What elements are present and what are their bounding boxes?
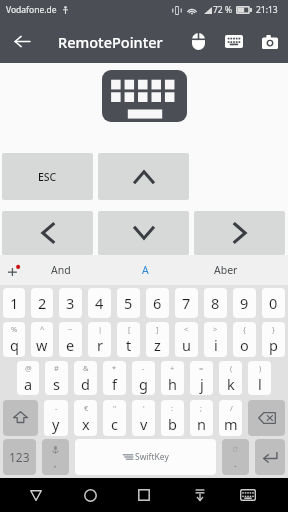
button[interactable]: 7 [175,288,198,318]
button[interactable]: 6 [146,288,169,318]
button[interactable]: > [204,322,227,357]
button[interactable]: Back [0,20,44,63]
staticText: " [113,403,117,413]
button[interactable]: ' [132,400,155,436]
staticText: { [243,324,246,334]
button[interactable]: Period [222,439,249,475]
button[interactable]: " [103,400,126,436]
button[interactable]: & [74,361,97,395]
button[interactable]: ~ [59,322,82,357]
button[interactable]: # [45,361,68,395]
staticText: d [81,374,90,394]
button[interactable]: Down [98,211,189,255]
button[interactable]: ] [146,322,169,357]
button[interactable]: Left [2,211,93,255]
button[interactable]: Hide keyboard [175,478,224,512]
button[interactable]: Backspace [248,400,285,436]
staticText: q [10,335,19,355]
button[interactable]: Keyboard mode [216,20,252,63]
button[interactable]: { [233,322,256,357]
staticText: } [272,324,275,334]
button[interactable]: - [132,361,155,395]
staticText: t [126,335,132,355]
staticText: . [234,457,237,469]
button[interactable]: Recents [117,478,171,512]
staticText: RemotePointer [58,32,163,52]
staticText: [ [128,324,131,334]
staticText: 2 [38,293,47,313]
staticText: 4 [95,293,104,313]
button[interactable]: @ [17,361,39,395]
button[interactable]: € [74,400,97,436]
button[interactable]: | [88,322,111,357]
button[interactable]: Show keyboard [102,70,187,122]
button[interactable]: 8 [204,288,227,318]
button[interactable]: 2 [31,288,53,318]
button[interactable]: Up [98,153,189,200]
staticText: r [97,335,103,355]
button[interactable]: Shift [3,400,38,436]
staticText: b [168,414,177,434]
button[interactable]: : [161,400,184,436]
button[interactable]: 3 [59,288,82,318]
button[interactable]: Right [194,211,285,255]
staticText: = [199,363,204,373]
button[interactable]: } [262,322,285,357]
staticText: o [240,335,249,355]
staticText: h [168,374,177,394]
button[interactable]: = [190,361,213,395]
button[interactable]: + [161,361,184,395]
button[interactable]: And [20,255,102,285]
button[interactable]: Add clipboard item [0,255,29,285]
button[interactable]: Back [9,478,63,512]
staticText: 9 [240,293,249,313]
button[interactable]: ) [248,361,271,395]
button[interactable]: Space [75,439,216,475]
button[interactable]: % [3,322,25,357]
staticText: / [230,403,233,413]
button[interactable]: ; [190,400,213,436]
staticText: ESC [38,170,57,184]
staticText: ^ [40,324,45,334]
staticText: g [139,374,148,394]
button[interactable]: Enter [255,439,285,475]
button[interactable]: / [219,400,242,436]
button[interactable]: ^ [31,322,53,357]
button[interactable]: Home [63,478,117,512]
staticText: 5 [124,293,133,313]
button[interactable]: A [104,255,186,285]
button[interactable]: < [175,322,198,357]
button[interactable]: 1 [3,288,25,318]
staticText: < [184,324,189,334]
staticText: x [82,414,90,434]
button[interactable]: * [103,361,126,395]
button[interactable]: Aber [185,255,267,285]
staticText: 123 [9,449,30,465]
button[interactable]: ESC [2,153,93,200]
staticText: f [112,374,117,394]
staticText: * [112,363,117,373]
staticText: v [140,414,148,434]
button[interactable]: Symbols [3,439,36,475]
button[interactable]: 0 [262,288,285,318]
button[interactable]: Camera [252,20,288,63]
staticText: 6 [153,293,162,313]
button[interactable]: [ [117,322,140,357]
staticText: 8 [211,293,220,313]
button[interactable]: Mouse mode [180,20,216,63]
button[interactable]: Voice input [42,439,69,475]
staticText: + [170,363,175,373]
button[interactable]: - [44,400,68,436]
staticText: ; [200,403,203,413]
staticText: j [200,374,204,394]
staticText: : [171,403,174,413]
staticText: 0 [269,293,278,313]
button[interactable]: 5 [117,288,140,318]
button[interactable]: Switch keyboard [228,478,268,512]
button[interactable]: 9 [233,288,256,318]
staticText: Vodafone.de [6,4,57,16]
button[interactable]: ( [219,361,242,395]
staticText: SwiftKey [135,451,169,463]
staticText: - [142,363,145,373]
button[interactable]: 4 [88,288,111,318]
